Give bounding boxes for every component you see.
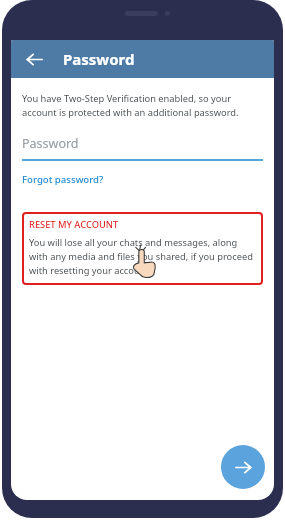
- staticText: Forgot password?: [22, 173, 104, 186]
- staticText: Password: [22, 135, 79, 152]
- button[interactable]: Password: [22, 135, 263, 161]
- staticText: Password: [63, 49, 135, 69]
- button[interactable]: Forgot password?: [22, 173, 104, 186]
- button[interactable]: Next: [221, 445, 265, 489]
- staticText: RESET MY ACCOUNT: [29, 218, 119, 231]
- button[interactable]: RESET MY ACCOUNT: [22, 212, 263, 285]
- staticText: You have Two-Step Verification enabled, …: [22, 92, 263, 119]
- button[interactable]: Back: [19, 44, 49, 74]
- staticText: You will lose all your chats and message…: [29, 236, 256, 276]
